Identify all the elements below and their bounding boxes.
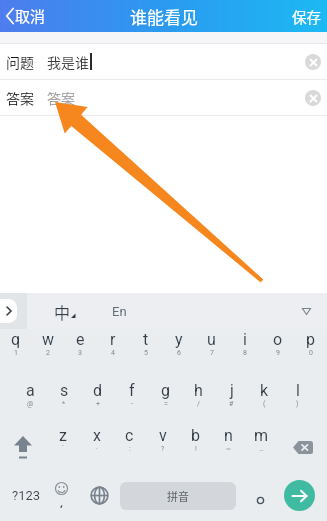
staticText: u — [207, 330, 216, 349]
staticText: l — [296, 381, 300, 400]
button[interactable]: En — [112, 304, 127, 319]
button[interactable]: a — [13, 377, 47, 424]
staticText: w — [42, 330, 55, 349]
button[interactable] — [302, 308, 311, 315]
staticText: 谁能看见 — [130, 4, 198, 29]
button[interactable]: d — [81, 377, 115, 424]
staticText: 4 — [111, 349, 115, 357]
staticText: 8 — [243, 349, 247, 357]
button[interactable]: , — [55, 482, 68, 510]
button[interactable]: e — [64, 329, 96, 377]
staticText: 0 — [309, 349, 313, 357]
button[interactable] — [0, 424, 46, 470]
button[interactable] — [305, 54, 321, 70]
button[interactable]: z — [46, 424, 80, 470]
staticText: 1 — [14, 349, 18, 357]
button[interactable]: 中 — [54, 300, 76, 323]
staticText: 2 — [46, 349, 50, 357]
staticText: h — [194, 381, 203, 400]
button[interactable]: p — [294, 329, 327, 377]
staticText: ` — [62, 445, 65, 453]
staticText: … — [259, 445, 264, 453]
staticText: + — [96, 400, 100, 408]
staticText: 3 — [78, 349, 82, 357]
staticText: , — [60, 495, 64, 510]
button[interactable] — [90, 486, 109, 505]
staticText: ) — [296, 400, 299, 408]
staticText: 保存 — [292, 6, 321, 27]
button[interactable]: i — [228, 329, 261, 377]
button[interactable]: j — [215, 377, 248, 424]
staticText: 取消 — [15, 5, 46, 27]
staticText: b — [191, 426, 200, 445]
button[interactable]: 问题 — [0, 44, 327, 79]
button[interactable]: v — [146, 424, 179, 470]
button[interactable]: t — [129, 329, 162, 377]
staticText: f — [129, 381, 135, 400]
button[interactable]: h — [182, 377, 215, 424]
button[interactable]: q — [0, 329, 32, 377]
button[interactable]: n — [212, 424, 245, 470]
button[interactable]: m — [245, 424, 278, 470]
staticText: 5 — [144, 349, 148, 357]
staticText: x — [93, 426, 101, 445]
button[interactable]: l — [281, 377, 314, 424]
staticText: 我是谁 — [47, 52, 89, 72]
staticText: t — [143, 330, 149, 349]
button[interactable]: f — [115, 377, 149, 424]
button[interactable] — [256, 496, 265, 505]
staticText: s — [60, 381, 69, 400]
staticText: : — [129, 445, 131, 453]
staticText: 答案 — [6, 88, 34, 108]
button[interactable] — [278, 424, 327, 470]
staticText: a — [26, 381, 35, 400]
staticText: * — [62, 400, 66, 408]
staticText: ?123 — [12, 488, 41, 503]
staticText: 6 — [177, 349, 181, 357]
button[interactable]: s — [47, 377, 81, 424]
staticText: ! — [195, 445, 197, 453]
staticText: e — [76, 330, 85, 349]
button[interactable]: 拼音 — [120, 482, 236, 510]
staticText: = — [164, 400, 168, 408]
button[interactable]: 保存 — [292, 6, 321, 27]
button[interactable]: o — [261, 329, 294, 377]
button[interactable]: w — [32, 329, 64, 377]
staticText: · — [96, 445, 98, 453]
button[interactable]: k — [248, 377, 281, 424]
staticText: c — [125, 426, 134, 445]
button[interactable]: 取消 — [5, 5, 46, 27]
button[interactable]: x — [80, 424, 113, 470]
staticText: ( — [263, 400, 266, 408]
staticText: y — [175, 330, 183, 349]
button[interactable]: u — [195, 329, 228, 377]
staticText: q — [11, 330, 21, 349]
staticText: ? — [161, 445, 165, 453]
staticText: r — [110, 330, 116, 349]
button[interactable] — [305, 90, 321, 106]
button[interactable]: y — [162, 329, 195, 377]
staticText: 9 — [276, 349, 280, 357]
staticText: m — [254, 426, 269, 445]
button[interactable]: ?123 — [12, 488, 41, 503]
button[interactable]: c — [113, 424, 146, 470]
button[interactable] — [0, 299, 17, 323]
staticText: - — [131, 400, 133, 408]
staticText: j — [230, 381, 234, 400]
button[interactable]: 答案 — [0, 80, 327, 115]
staticText: p — [306, 330, 315, 349]
button[interactable]: g — [149, 377, 182, 424]
staticText: 拼音 — [167, 488, 189, 504]
staticText: g — [161, 381, 170, 400]
staticText: o — [273, 330, 283, 349]
button[interactable] — [284, 480, 315, 511]
staticText: n — [224, 426, 233, 445]
button[interactable]: b — [179, 424, 212, 470]
staticText: 答案 — [47, 88, 75, 108]
staticText: 问题 — [6, 52, 34, 72]
staticText: v — [159, 426, 167, 445]
staticText: @ — [27, 400, 34, 408]
button[interactable]: r — [96, 329, 129, 377]
staticText: / — [197, 400, 200, 408]
staticText: i — [243, 330, 247, 349]
